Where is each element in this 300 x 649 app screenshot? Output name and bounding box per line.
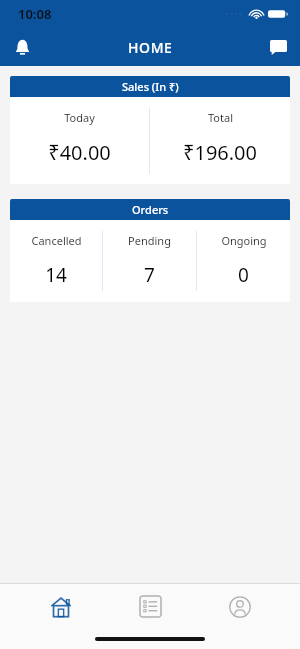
button[interactable]: Messages	[256, 28, 300, 66]
button[interactable]: Pending	[103, 220, 196, 288]
button[interactable]: Home	[32, 584, 90, 629]
staticText: Today	[64, 110, 95, 125]
staticText: 0	[238, 262, 249, 288]
staticText: ₹40.00	[48, 139, 111, 166]
staticText: ₹196.00	[183, 139, 257, 166]
staticText: Orders	[132, 202, 169, 217]
button[interactable]: Ongoing	[197, 220, 290, 288]
staticText: Ongoing	[221, 233, 267, 248]
button[interactable]: Profile	[211, 584, 269, 629]
staticText: 14	[45, 262, 67, 288]
staticText: Pending	[128, 233, 171, 248]
button[interactable]: Today	[10, 97, 149, 166]
staticText: Cancelled	[31, 233, 82, 248]
staticText: 7	[144, 262, 155, 288]
button[interactable]: Total	[150, 97, 290, 166]
staticText: Sales (In ₹)	[122, 79, 179, 94]
staticText: HOME	[128, 38, 173, 57]
button[interactable]: Orders	[121, 584, 179, 629]
staticText: 10:08	[18, 5, 52, 23]
button[interactable]: Notifications	[0, 28, 44, 66]
staticText: Total	[208, 110, 233, 125]
button[interactable]: Cancelled	[10, 220, 102, 288]
